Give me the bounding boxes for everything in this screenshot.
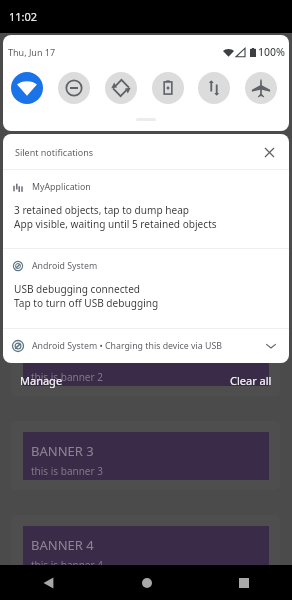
staticText: App visible, waiting until 5 retained ob… xyxy=(14,217,217,231)
button[interactable] xyxy=(11,421,280,490)
button[interactable]: Clear all xyxy=(227,370,275,391)
staticText: BANNER 4 xyxy=(31,536,94,554)
button[interactable]: Clear silent notifications xyxy=(260,143,278,161)
staticText: Clear all xyxy=(230,373,272,388)
button[interactable]: Mobile data xyxy=(198,72,230,104)
staticText: BANNER 2 xyxy=(31,348,94,366)
button[interactable]: Silent notifications xyxy=(3,134,289,169)
button[interactable]: Android System • Charging this device vi… xyxy=(3,329,289,363)
button[interactable] xyxy=(11,515,280,584)
button[interactable] xyxy=(11,327,280,396)
button[interactable]: Do not disturb xyxy=(58,72,90,104)
button[interactable]: Battery saver xyxy=(152,72,184,104)
staticText: Android System • Charging this device vi… xyxy=(32,340,223,352)
staticText: 3 retained objects, tap to dump heap xyxy=(14,203,190,217)
staticText: this is banner 3 xyxy=(31,464,103,478)
staticText: Manage xyxy=(20,373,63,388)
button[interactable]: Recents xyxy=(195,565,292,600)
button[interactable]: Home xyxy=(98,565,195,600)
staticText: this is banner 4 xyxy=(31,558,103,572)
staticText: USB debugging connected xyxy=(14,282,141,296)
staticText: MyApplication xyxy=(32,181,91,193)
staticText: Tap to turn off USB debugging xyxy=(14,296,159,310)
staticText: 100% xyxy=(258,45,285,59)
staticText: Android System xyxy=(32,260,98,272)
staticText: this is banner 2 xyxy=(31,370,103,384)
button[interactable]: MyApplication xyxy=(3,170,289,248)
staticText: Thu, Jun 17 xyxy=(8,46,56,58)
button[interactable]: Expand xyxy=(261,336,281,356)
button[interactable]: Airplane mode xyxy=(245,72,277,104)
button[interactable]: Back xyxy=(0,565,98,600)
button[interactable]: Manage xyxy=(17,370,66,391)
button[interactable]: Wi-Fi xyxy=(11,72,43,104)
staticText: 11:02 xyxy=(9,9,38,24)
staticText: BANNER 3 xyxy=(31,442,94,460)
button[interactable]: Auto rotate xyxy=(105,72,137,104)
button[interactable]: Android System xyxy=(3,249,289,328)
staticText: Silent notifications xyxy=(15,146,94,158)
